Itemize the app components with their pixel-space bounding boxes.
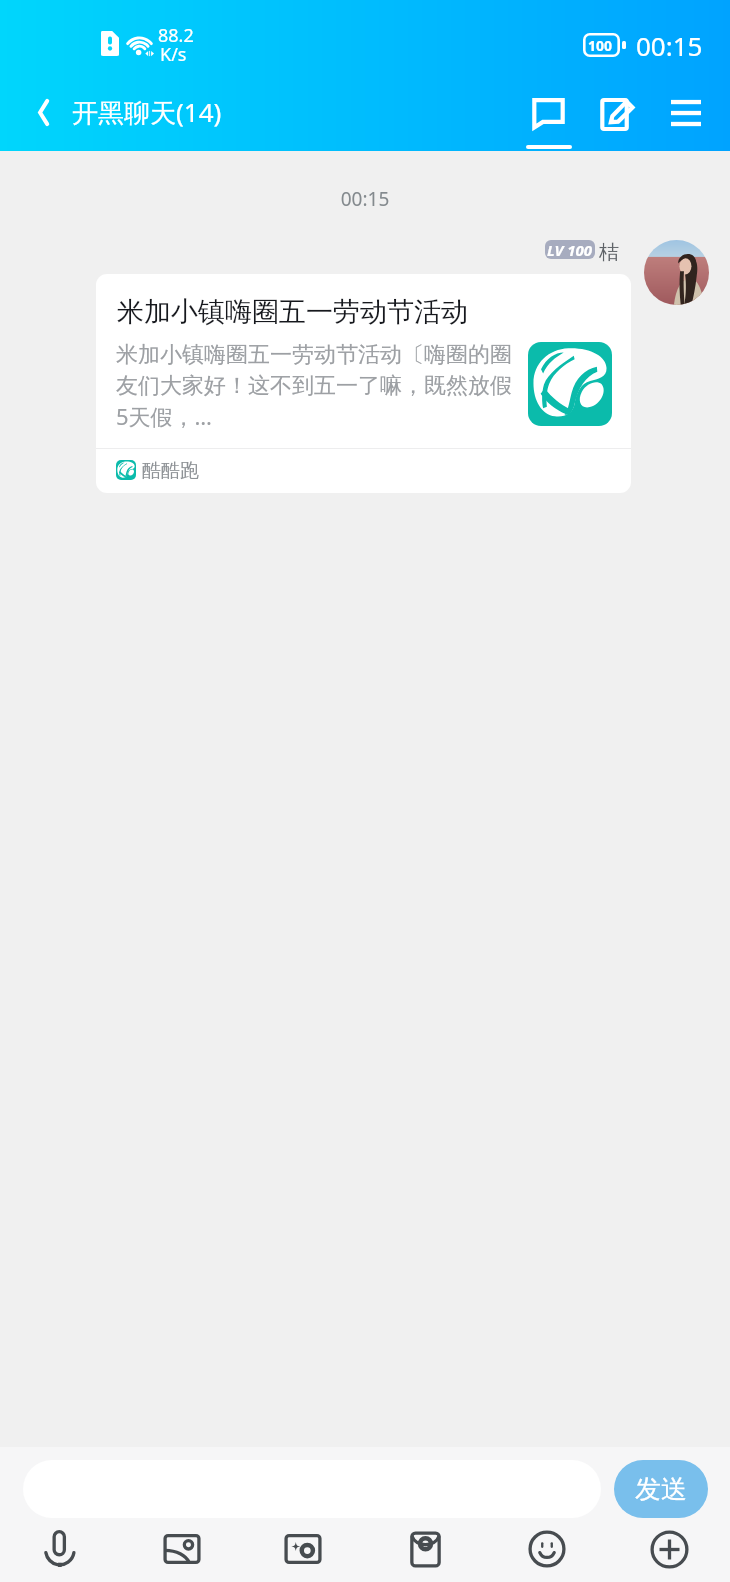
button[interactable]: Voice message (0, 1518, 121, 1582)
button[interactable]: 米加小镇嗨圈五一劳动节活动 (96, 274, 631, 493)
button[interactable]: More (608, 1518, 730, 1582)
staticText: 桔 (599, 240, 619, 265)
button[interactable]: Messages (512, 85, 584, 151)
button[interactable]: Photo (121, 1518, 242, 1582)
staticText: 开黑聊天(14) (72, 94, 222, 130)
staticText: 酷酷跑 (142, 459, 199, 483)
button[interactable]: Red packet (364, 1518, 486, 1582)
staticText: 发送 (635, 1473, 687, 1506)
button[interactable]: 发送 (614, 1460, 708, 1518)
button[interactable]: Avatar (644, 240, 709, 305)
staticText: 100 (588, 36, 613, 55)
button[interactable]: Back (16, 84, 72, 140)
staticText: 00:15 (636, 28, 703, 63)
button[interactable]: Sticker (242, 1518, 364, 1582)
button[interactable]: Menu (655, 85, 717, 145)
staticText: 米加小镇嗨圈五一劳动节活动〔嗨圈的圈友们大家好！这不到五一了嘛，既然放假5天假，… (116, 341, 521, 432)
staticText: LV 100 (547, 240, 593, 259)
staticText: K/s (160, 42, 187, 67)
staticText: 88.2 (158, 23, 194, 48)
button[interactable]: Compose (585, 85, 647, 145)
staticText: 米加小镇嗨圈五一劳动节活动 (117, 295, 468, 329)
button[interactable]: Emoji (486, 1518, 608, 1582)
staticText: 00:15 (0, 186, 730, 212)
